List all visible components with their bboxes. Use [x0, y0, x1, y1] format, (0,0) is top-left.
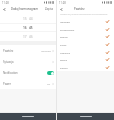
staticText: niedziela: [60, 20, 70, 23]
button[interactable]: Back: [1, 6, 8, 13]
staticText: Dodaj harmonogram: [11, 7, 38, 11]
staticText: 11:28: [2, 1, 9, 5]
staticText: piątek: [60, 58, 67, 61]
button[interactable]: poniedziałek: [57, 25, 114, 33]
button[interactable]: Zapisz: [44, 7, 54, 11]
button[interactable]: czwartek: [57, 48, 114, 56]
button[interactable]: Notification: [0, 67, 56, 78]
staticText: 17: [23, 35, 27, 39]
staticText: środa: [60, 43, 67, 46]
staticText: 16: [23, 26, 27, 30]
staticText: czwartek: [60, 51, 70, 54]
staticText: On: [47, 82, 51, 85]
button[interactable]: Power: [0, 78, 56, 89]
staticText: 11:28: [59, 1, 66, 5]
staticText: Zapisz: [45, 7, 53, 11]
button[interactable]: piątek: [57, 56, 114, 63]
staticText: Sytuacja: [3, 60, 14, 64]
staticText: sobota: [60, 66, 68, 69]
staticText: poniedziałek: [60, 28, 75, 31]
staticText: niedziela: [41, 49, 51, 52]
staticText: 46: [29, 35, 33, 39]
staticText: Wybierz dni, w które harmonogram ma się …: [60, 13, 108, 16]
staticText: wtorek: [60, 35, 68, 38]
button[interactable]: sobota: [57, 63, 114, 71]
button[interactable]: Back: [58, 6, 65, 13]
button[interactable]: środa: [57, 40, 114, 48]
button[interactable]: wtorek: [57, 33, 114, 40]
staticText: Notification: [3, 71, 18, 75]
staticText: Powtórz: [3, 49, 14, 53]
staticText: 44: [29, 17, 33, 21]
staticText: 45: [29, 26, 33, 30]
button[interactable]: niedziela: [57, 17, 114, 25]
staticText: Powtórz: [74, 7, 85, 11]
button[interactable]: Sytuacja: [0, 56, 56, 67]
button[interactable]: Powtórz: [0, 45, 56, 56]
staticText: Power: [3, 82, 11, 86]
staticText: 15: [23, 17, 27, 21]
